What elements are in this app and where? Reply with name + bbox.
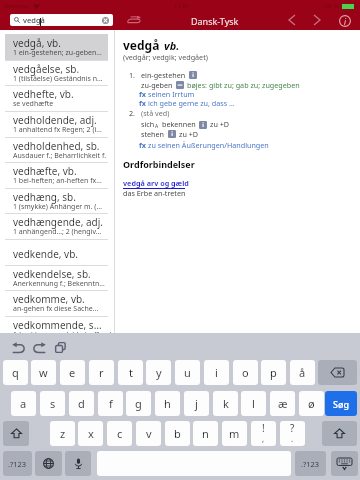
staticText: ein-gestehen bbox=[141, 70, 186, 80]
button[interactable]: Hide keyboard bbox=[331, 451, 358, 476]
button[interactable]: ! bbox=[251, 421, 276, 446]
button[interactable]: vedhefte, vb. bbox=[0, 85, 114, 111]
button[interactable]: vedhæng, sb. bbox=[0, 188, 114, 214]
button[interactable]: Shift bbox=[3, 421, 29, 446]
button[interactable]: Backspace bbox=[318, 360, 357, 385]
button[interactable]: t bbox=[118, 360, 143, 385]
button[interactable]: l bbox=[241, 391, 266, 416]
button[interactable]: m bbox=[222, 421, 247, 446]
staticText: vb. bbox=[164, 38, 180, 53]
button[interactable]: ø bbox=[299, 391, 324, 416]
button[interactable]: r bbox=[89, 360, 114, 385]
button[interactable]: i bbox=[204, 360, 229, 385]
button[interactable]: vedgå bbox=[10, 14, 113, 26]
button[interactable]: j bbox=[184, 391, 209, 416]
staticText: j bbox=[195, 396, 198, 411]
button[interactable]: k bbox=[213, 391, 238, 416]
button[interactable]: vedholdenhed, sb. bbox=[0, 137, 114, 163]
button[interactable]: Undo bbox=[9, 338, 27, 356]
staticText: .?123 bbox=[8, 459, 27, 469]
staticText: vedgåelse, sb. bbox=[13, 62, 80, 76]
staticText: ! bbox=[262, 421, 265, 435]
button[interactable]: Redo bbox=[30, 338, 48, 356]
button[interactable]: æ bbox=[270, 391, 295, 416]
staticText: s bbox=[50, 396, 56, 411]
button[interactable]: .?123 bbox=[295, 451, 326, 476]
button[interactable]: vedholdende, adj. bbox=[0, 111, 114, 137]
staticText: seinen Irrtum bbox=[148, 89, 195, 99]
staticText: q bbox=[12, 365, 19, 380]
button[interactable]: o bbox=[233, 360, 258, 385]
button[interactable]: s bbox=[40, 391, 65, 416]
staticText: das Erbe an-treten bbox=[123, 188, 186, 198]
staticText: vedhefte, vb. bbox=[13, 87, 74, 101]
button[interactable]: vedkendelse, sb. bbox=[0, 265, 114, 291]
button[interactable]: Shift bbox=[322, 421, 357, 446]
button[interactable]: n bbox=[193, 421, 218, 446]
button[interactable]: q bbox=[3, 360, 28, 385]
button[interactable]: vedkommende, s… bbox=[0, 316, 114, 342]
staticText: 1. bbox=[129, 70, 136, 80]
button[interactable]: e bbox=[60, 360, 85, 385]
button[interactable]: Info bbox=[337, 13, 353, 29]
button[interactable]: Bookmarks bbox=[126, 14, 142, 25]
staticText: Ausdauer f.; Beharrlichkeit f. bbox=[13, 151, 107, 161]
button[interactable]: b bbox=[165, 421, 190, 446]
button[interactable]: vedgå, vb. bbox=[0, 34, 114, 60]
staticText: k bbox=[223, 396, 229, 411]
staticText: l bbox=[252, 396, 255, 411]
button[interactable]: ? bbox=[280, 421, 305, 446]
staticText: 1 ein-gestehen; zu-geben… bbox=[13, 48, 102, 58]
button[interactable]: vedkomme, vb. bbox=[0, 290, 114, 316]
button[interactable]: Previous bbox=[284, 12, 300, 28]
staticText: g bbox=[135, 396, 142, 411]
staticText: p bbox=[270, 365, 277, 380]
staticText: e bbox=[69, 365, 76, 380]
button[interactable]: d bbox=[69, 391, 94, 416]
staticText: 1 (tilståelse) Geständnis n… bbox=[13, 74, 103, 84]
staticText: ø bbox=[308, 396, 315, 411]
staticText: an-gehen fx diese Sache… bbox=[13, 304, 99, 314]
button[interactable]: h bbox=[155, 391, 180, 416]
button[interactable]: Dictation bbox=[65, 451, 91, 476]
button[interactable]: vedhængende, adj. bbox=[0, 213, 114, 239]
staticText: vedholdenhed, sb. bbox=[13, 139, 100, 153]
button[interactable]: .?123 bbox=[3, 451, 32, 476]
button[interactable]: Søg bbox=[325, 391, 357, 416]
button[interactable]: å bbox=[290, 360, 315, 385]
button[interactable]: Change language bbox=[35, 451, 62, 476]
button[interactable]: p bbox=[261, 360, 286, 385]
staticText: m bbox=[229, 426, 240, 441]
button[interactable]: a bbox=[11, 391, 36, 416]
button[interactable]: w bbox=[31, 360, 56, 385]
staticText: z bbox=[60, 426, 66, 441]
button[interactable]: v bbox=[136, 421, 161, 446]
button[interactable]: f bbox=[98, 391, 123, 416]
staticText: vedholdende, adj. bbox=[13, 113, 97, 127]
button[interactable]: Next bbox=[309, 12, 325, 28]
staticText: (vedgår; vedgik; vedgået) bbox=[123, 52, 208, 62]
staticText: .?123 bbox=[301, 459, 320, 469]
staticText: Operator bbox=[4, 2, 30, 10]
staticText: 1 anhaltend fx Regen; 2 (i… bbox=[13, 125, 102, 135]
button[interactable]: u bbox=[175, 360, 200, 385]
button[interactable]: vedgå arv og gæld bbox=[123, 178, 189, 189]
staticText: vedkomme, vb. bbox=[13, 292, 85, 306]
button[interactable]: vedkende, vb. bbox=[0, 239, 114, 265]
button[interactable]: vedgåelse, sb. bbox=[0, 60, 114, 86]
staticText: zu seinen Äußerungen/Handlungen bbox=[148, 140, 269, 150]
button[interactable]: c bbox=[107, 421, 132, 446]
button[interactable]: vedhæfte, vb. bbox=[0, 162, 114, 188]
staticText: zu +D bbox=[179, 129, 199, 139]
button[interactable]: Copy bbox=[51, 338, 69, 356]
staticText: f bbox=[109, 396, 113, 411]
staticText: vedkommende, s… bbox=[13, 318, 102, 332]
button[interactable]: y bbox=[146, 360, 171, 385]
staticText: vedkendelse, sb. bbox=[13, 267, 91, 281]
button[interactable]: g bbox=[126, 391, 151, 416]
button[interactable]: z bbox=[50, 421, 75, 446]
staticText: 1 (ved-kommende) betreffend… bbox=[13, 330, 117, 340]
staticText: sich bbox=[141, 119, 155, 129]
button[interactable]: x bbox=[78, 421, 103, 446]
